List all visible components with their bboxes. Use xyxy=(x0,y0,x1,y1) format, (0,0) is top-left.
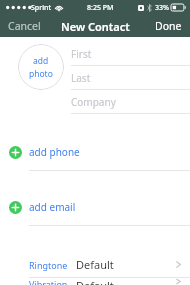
staticText: New Contact xyxy=(61,19,130,34)
button[interactable]: add email xyxy=(0,197,190,226)
staticText: Ringtone xyxy=(29,259,68,271)
staticText: Last xyxy=(71,71,91,85)
button[interactable]: Vibration xyxy=(0,278,190,285)
staticText: add email xyxy=(29,200,76,214)
staticText: Vibration xyxy=(29,278,68,285)
staticText: Done xyxy=(155,19,182,33)
staticText: Company xyxy=(71,95,116,109)
button[interactable]: Cancel xyxy=(0,15,49,37)
staticText: Sprint xyxy=(31,3,52,13)
staticText: add xyxy=(33,55,49,67)
staticText: Default xyxy=(76,278,114,285)
button[interactable]: Last xyxy=(71,66,190,90)
button[interactable]: Company xyxy=(71,90,190,114)
button[interactable]: Done xyxy=(147,15,190,37)
staticText: First xyxy=(71,47,92,61)
staticText: 33% xyxy=(155,3,169,13)
button[interactable]: First xyxy=(71,42,190,66)
staticText: add phone xyxy=(29,145,80,159)
staticText: photo xyxy=(29,68,53,80)
button[interactable]: add phone xyxy=(0,142,190,171)
button[interactable]: Add photo xyxy=(18,44,64,90)
button[interactable]: Ringtone xyxy=(0,252,190,278)
staticText: 8:25 PM xyxy=(87,3,114,13)
staticText: Cancel xyxy=(8,19,41,33)
staticText: Default xyxy=(76,257,114,272)
